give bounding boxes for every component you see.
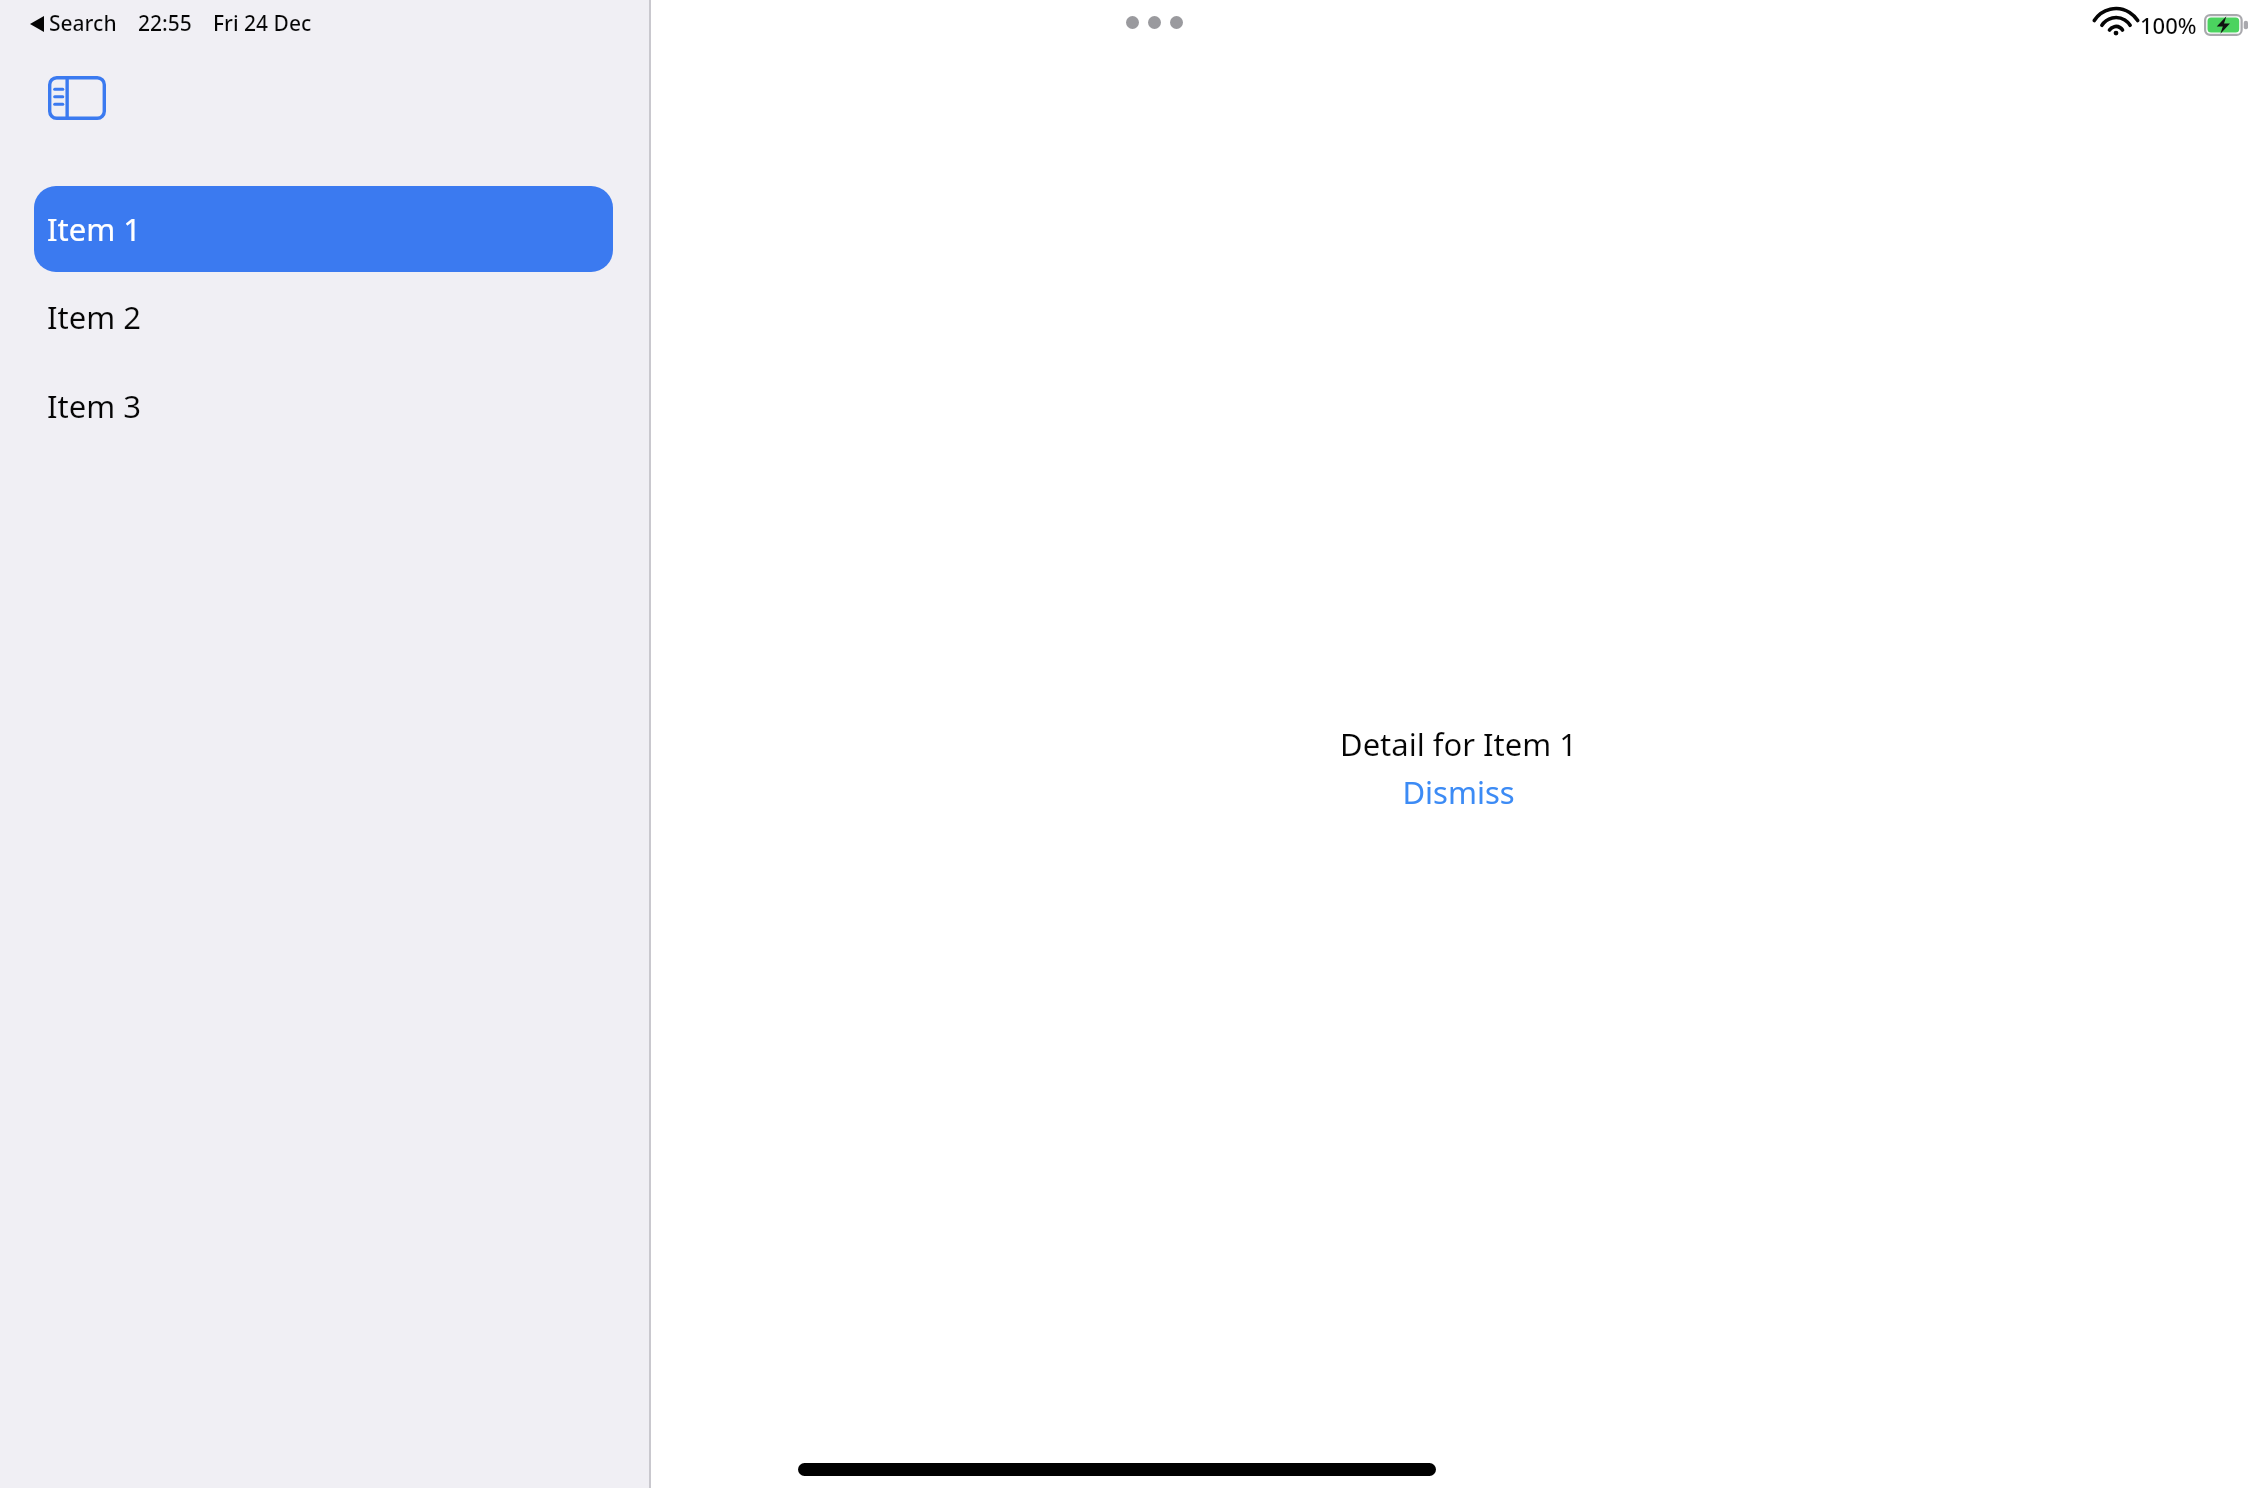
button[interactable]: Multitasking options <box>1126 16 1183 29</box>
button[interactable]: Dismiss <box>1402 771 1515 813</box>
staticText: Detail for Item 1 <box>1340 723 1577 765</box>
button[interactable]: Item 1 <box>34 186 613 272</box>
staticText: Dismiss <box>1402 771 1515 813</box>
button[interactable]: Toggle sidebar <box>44 72 110 124</box>
staticText: Item 3 <box>47 385 141 427</box>
button[interactable]: Item 3 <box>34 361 613 450</box>
staticText: Item 2 <box>47 296 141 338</box>
staticText: Fri 24 Dec <box>213 9 312 38</box>
staticText: 100% <box>2140 10 2197 40</box>
staticText: Item 1 <box>47 208 141 250</box>
staticText: Search <box>49 9 117 38</box>
button[interactable]: Item 2 <box>34 272 613 361</box>
staticText: 22:55 <box>138 9 192 38</box>
